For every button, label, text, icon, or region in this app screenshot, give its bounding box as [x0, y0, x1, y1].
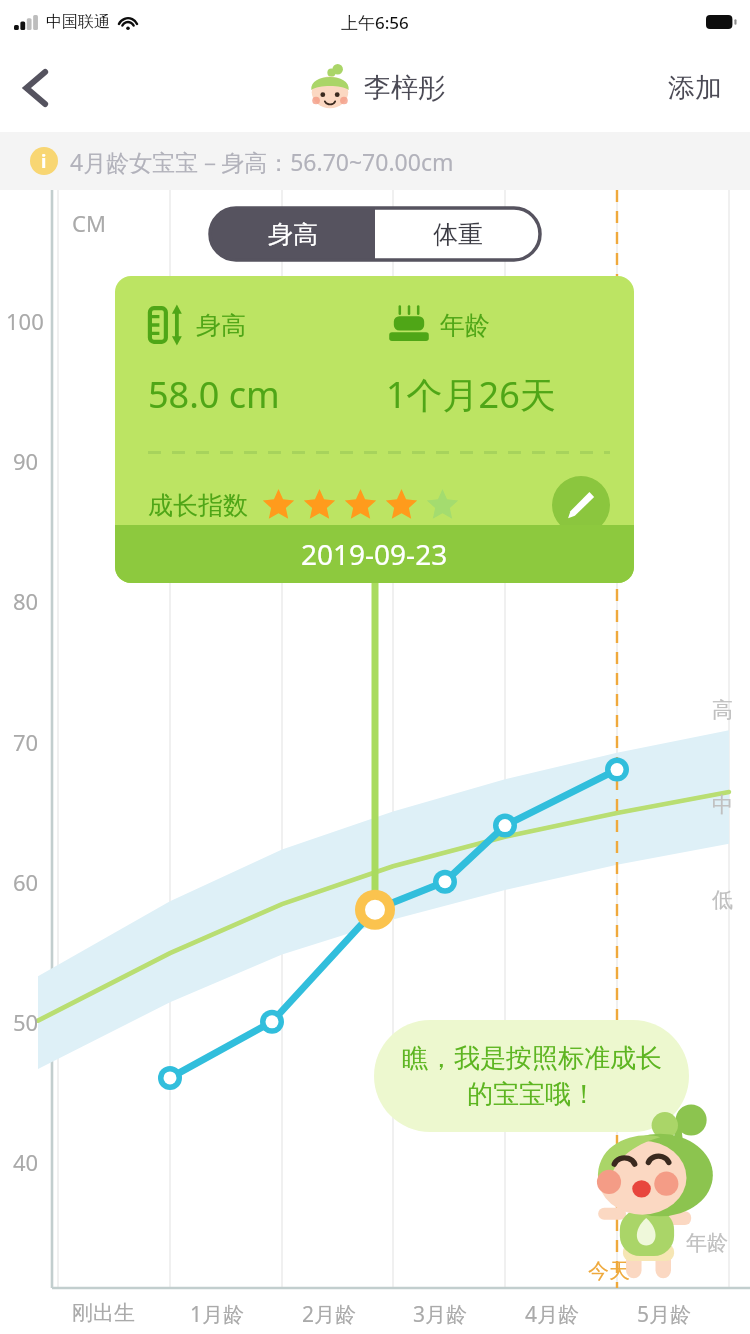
staticText: 李梓彤: [364, 71, 445, 105]
staticText: 2019-09-23: [301, 535, 448, 573]
staticText: 1个月26天: [386, 370, 556, 419]
button[interactable]: 添加: [656, 59, 734, 117]
staticText: 体重: [433, 219, 483, 250]
staticText: 3月龄: [413, 1300, 468, 1329]
staticText: 4月龄女宝宝－身高：56.70~70.00cm: [70, 146, 454, 177]
staticText: 60: [13, 867, 39, 897]
staticText: 年龄: [440, 310, 490, 341]
staticText: 中国联通: [46, 12, 110, 32]
staticText: 90: [13, 446, 39, 476]
staticText: 50: [13, 1007, 39, 1037]
staticText: 2月龄: [302, 1300, 357, 1329]
staticText: 身高: [196, 310, 246, 341]
staticText: 1月龄: [190, 1300, 245, 1329]
staticText: 58.0 cm: [148, 370, 386, 419]
staticText: 70: [13, 727, 39, 757]
staticText: 今天: [588, 1258, 630, 1284]
staticText: 身高: [268, 219, 318, 250]
staticText: 刚出生: [72, 1300, 135, 1326]
staticText: 上午6:56: [341, 11, 409, 34]
button[interactable]: 身高: [115, 276, 634, 583]
staticText: 高: [712, 697, 733, 723]
staticText: 4月龄: [525, 1300, 580, 1329]
staticText: 5月龄: [637, 1300, 692, 1329]
staticText: 低: [712, 887, 733, 913]
staticText: 80: [13, 586, 39, 616]
staticText: 瞧，我是按照标准成长 的宝宝哦！: [402, 1042, 662, 1111]
staticText: i: [41, 149, 47, 174]
button[interactable]: Edit: [552, 476, 610, 534]
button[interactable]: Back: [6, 58, 66, 118]
staticText: 添加: [668, 71, 722, 105]
button[interactable]: 体重: [375, 208, 540, 260]
button[interactable]: 身高: [210, 208, 375, 260]
staticText: 年龄: [686, 1230, 728, 1256]
staticText: 成长指数: [148, 490, 248, 521]
staticText: CM: [72, 208, 106, 238]
staticText: 中: [712, 792, 733, 818]
staticText: 100: [6, 306, 44, 336]
staticText: 40: [13, 1147, 39, 1177]
